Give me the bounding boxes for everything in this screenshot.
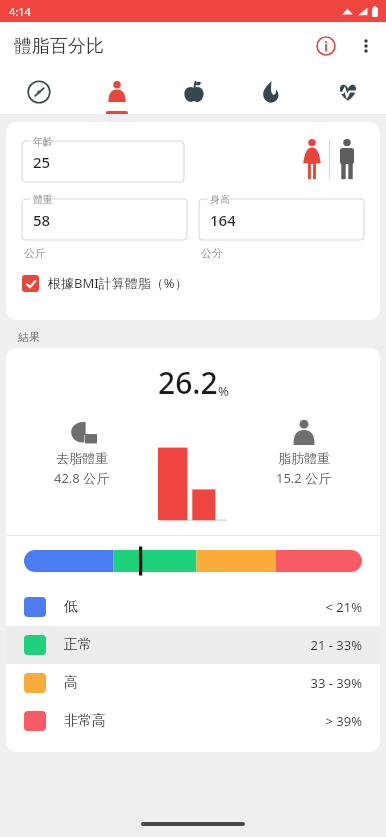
staticText: 公分 — [201, 246, 223, 260]
staticText: 21 - 33% — [310, 636, 362, 654]
staticText: 脂肪體重 — [278, 450, 330, 466]
button[interactable]: Speedometer — [0, 70, 78, 114]
button[interactable]: 正常 — [6, 626, 380, 664]
button[interactable]: Nutrition — [155, 70, 232, 114]
staticText: % — [218, 382, 229, 400]
button[interactable]: 非常高 — [6, 702, 380, 740]
staticText: 42.8 公斤 — [54, 469, 110, 487]
staticText: 結果 — [18, 330, 40, 344]
staticText: 高 — [64, 674, 78, 692]
staticText: > 39% — [325, 712, 362, 730]
button[interactable]: 低 — [6, 588, 380, 626]
button[interactable]: 根據BMI計算體脂（%） — [22, 272, 188, 294]
button[interactable]: Info — [306, 26, 346, 66]
staticText: < 21% — [325, 598, 362, 616]
staticText: 164 — [210, 210, 236, 230]
staticText: 體脂百分比 — [14, 35, 104, 58]
button[interactable]: Calories — [232, 70, 309, 114]
staticText: 低 — [64, 598, 78, 616]
button[interactable]: More options — [346, 26, 386, 66]
button[interactable]: Body fat — [78, 70, 155, 114]
staticText: 去脂體重 — [56, 450, 108, 466]
button[interactable]: Female — [295, 136, 329, 182]
staticText: 年齡 — [33, 135, 53, 148]
button[interactable]: 高 — [6, 664, 380, 702]
staticText: 非常高 — [64, 712, 106, 730]
staticText: 26.2 — [158, 362, 218, 403]
button[interactable]: Male — [330, 136, 364, 182]
staticText: 15.2 公斤 — [276, 469, 332, 487]
staticText: 公斤 — [24, 246, 46, 260]
staticText: 33 - 39% — [310, 674, 362, 692]
staticText: 正常 — [64, 636, 92, 654]
staticText: 根據BMI計算體脂（%） — [48, 274, 188, 292]
staticText: 25 — [33, 152, 51, 172]
staticText: 4:14 — [9, 4, 31, 19]
staticText: 58 — [33, 210, 51, 230]
button[interactable]: Heart rate — [309, 70, 386, 114]
staticText: 身高 — [210, 193, 230, 206]
staticText: 體重 — [33, 193, 53, 206]
